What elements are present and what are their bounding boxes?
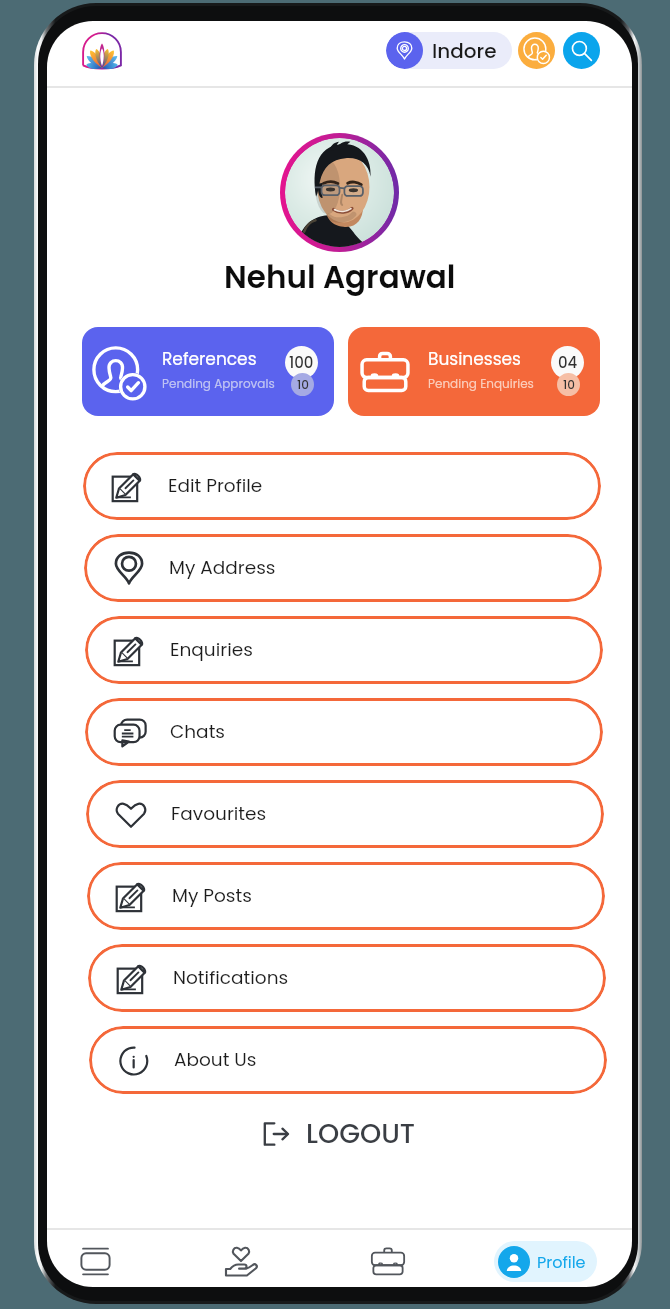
button[interactable]: My Posts (87, 862, 605, 930)
staticText: Indore (432, 37, 497, 65)
button[interactable]: Favourites (86, 780, 604, 848)
staticText: Notifications (173, 965, 289, 991)
staticText: Profile (537, 1251, 586, 1273)
staticText: LOGOUT (306, 1115, 416, 1153)
staticText: Pending Approvals (162, 375, 275, 392)
staticText: Edit Profile (168, 473, 263, 499)
button[interactable]: Search (563, 32, 600, 69)
button[interactable]: Enquiries (85, 616, 603, 684)
button[interactable]: LOGOUT (252, 1109, 426, 1159)
button[interactable]: Chats (85, 698, 603, 766)
staticText: References (162, 347, 257, 371)
button[interactable]: My Address (84, 534, 602, 602)
button[interactable]: Profile photo (285, 138, 394, 247)
staticText: My Address (169, 555, 276, 581)
button[interactable]: App logo (80, 30, 124, 74)
staticText: Pending Enquiries (428, 375, 534, 392)
staticText: Nehul Agrawal (224, 255, 456, 298)
staticText: About Us (174, 1047, 257, 1073)
staticText: Chats (170, 719, 226, 745)
button[interactable]: Businesses (348, 327, 600, 416)
button[interactable]: Verified profile (518, 32, 555, 69)
staticText: 04 (558, 352, 578, 373)
button[interactable]: Notifications (88, 944, 606, 1012)
button[interactable]: About Us (89, 1026, 607, 1094)
staticText: Businesses (428, 347, 521, 371)
staticText: 10 (297, 376, 309, 393)
button[interactable]: Donations (222, 1243, 260, 1281)
staticText: My Posts (172, 883, 252, 909)
button[interactable]: Home (79, 1245, 111, 1277)
button[interactable]: Edit Profile (83, 452, 601, 520)
button[interactable]: Profile (494, 1241, 597, 1282)
button[interactable]: Businesses (369, 1243, 407, 1281)
button[interactable]: Indore (386, 32, 512, 69)
staticText: Enquiries (170, 637, 253, 663)
staticText: 10 (563, 376, 575, 393)
button[interactable]: References (82, 327, 334, 416)
staticText: 100 (289, 352, 314, 373)
staticText: Favourites (171, 801, 267, 827)
